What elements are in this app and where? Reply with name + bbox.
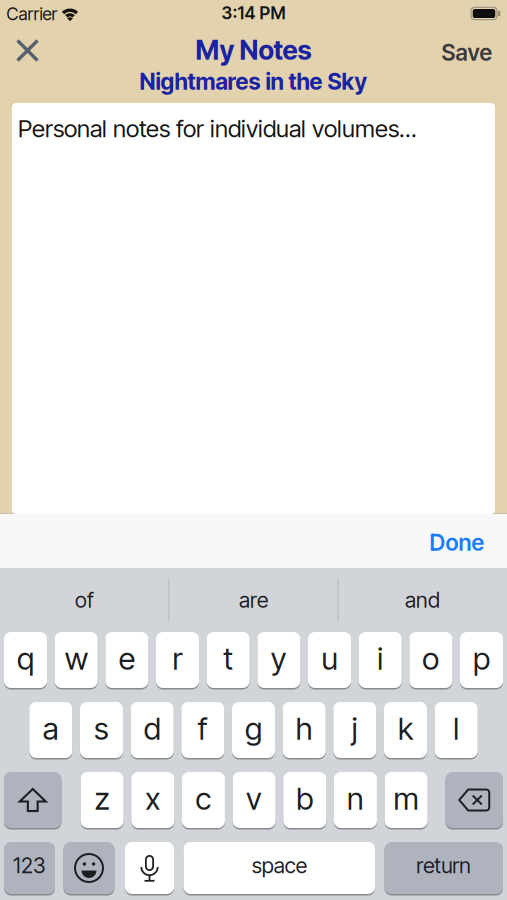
staticText: and (405, 587, 440, 613)
button[interactable]: f (181, 702, 224, 758)
button[interactable]: o (409, 632, 452, 688)
staticText: g (245, 710, 262, 747)
staticText: j (352, 710, 358, 747)
button[interactable]: t (207, 632, 250, 688)
button[interactable]: s (80, 702, 123, 758)
button[interactable]: of (4, 570, 164, 630)
button[interactable]: return (384, 842, 503, 894)
staticText: q (17, 640, 34, 677)
staticText: d (144, 710, 161, 747)
button[interactable]: e (105, 632, 148, 688)
staticText: y (271, 640, 287, 677)
button[interactable]: v (233, 772, 276, 828)
staticText: e (119, 640, 135, 677)
staticText: i (377, 640, 383, 677)
staticText: f (198, 710, 208, 747)
staticText: b (296, 780, 313, 817)
staticText: c (195, 780, 211, 817)
button[interactable]: z (81, 772, 124, 828)
staticText: Nightmares in the Sky (139, 68, 367, 95)
button[interactable]: w (55, 632, 98, 688)
button[interactable]: n (334, 772, 377, 828)
staticText: 123 (13, 853, 46, 878)
button[interactable]: Dictate (125, 842, 174, 894)
button[interactable]: Delete (445, 772, 503, 828)
staticText: w (65, 640, 88, 677)
staticText: space (252, 853, 307, 878)
button[interactable]: m (385, 772, 428, 828)
staticText: r (172, 640, 182, 677)
staticText: Save (441, 39, 492, 66)
staticText: o (422, 640, 439, 677)
button[interactable]: a (29, 702, 72, 758)
button[interactable]: y (257, 632, 300, 688)
staticText: x (145, 780, 160, 817)
staticText: return (416, 853, 471, 878)
button[interactable]: 123 (4, 842, 55, 894)
button[interactable]: space (183, 842, 375, 894)
button[interactable]: b (283, 772, 326, 828)
button[interactable]: j (333, 702, 376, 758)
staticText: u (321, 640, 337, 677)
button[interactable]: d (131, 702, 174, 758)
button[interactable]: x (131, 772, 174, 828)
staticText: h (296, 710, 313, 747)
staticText: Done (429, 529, 484, 556)
button[interactable]: Save (432, 32, 502, 72)
staticText: Personal notes for individual volumes... (18, 114, 417, 143)
button[interactable]: q (4, 632, 47, 688)
button[interactable]: are (173, 570, 333, 630)
button[interactable]: Done (412, 515, 502, 569)
button[interactable]: k (384, 702, 427, 758)
button[interactable]: Close (5, 30, 49, 70)
staticText: k (398, 710, 413, 747)
staticText: are (239, 587, 268, 613)
button[interactable]: p (460, 632, 503, 688)
button[interactable]: c (182, 772, 225, 828)
staticText: m (394, 780, 419, 817)
staticText: Carrier (6, 4, 57, 24)
staticText: My Notes (195, 34, 311, 66)
staticText: of (75, 587, 94, 613)
button[interactable]: h (283, 702, 326, 758)
staticText: v (246, 780, 262, 817)
staticText: p (473, 640, 490, 677)
button[interactable]: u (308, 632, 351, 688)
button[interactable]: r (156, 632, 199, 688)
staticText: l (453, 710, 459, 747)
staticText: s (94, 710, 109, 747)
button[interactable]: and (342, 570, 502, 630)
staticText: n (347, 780, 364, 817)
button[interactable]: Emoji (63, 842, 114, 894)
button[interactable]: i (359, 632, 402, 688)
button[interactable]: Shift (4, 772, 61, 828)
button[interactable]: l (435, 702, 478, 758)
button[interactable]: g (232, 702, 275, 758)
staticText: t (223, 640, 233, 677)
staticText: z (95, 780, 110, 817)
staticText: 3:14 PM (221, 3, 285, 23)
staticText: a (43, 710, 59, 747)
